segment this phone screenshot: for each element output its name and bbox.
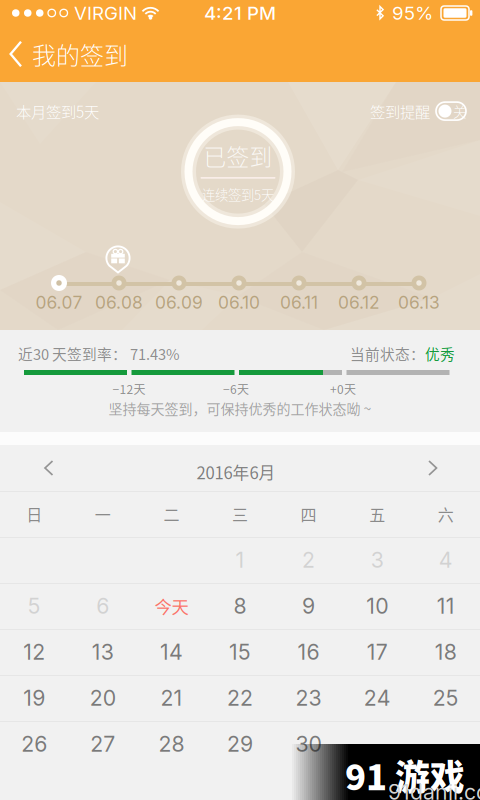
staticText: 3: [371, 547, 384, 573]
staticText: 关: [453, 101, 466, 121]
staticText: 06.12: [338, 292, 380, 313]
button[interactable]: 14: [137, 629, 206, 675]
staticText: 27: [90, 731, 115, 757]
staticText: 19: [23, 685, 45, 711]
button[interactable]: 13: [69, 629, 137, 675]
button[interactable]: 2: [274, 537, 343, 583]
button[interactable]: 8: [206, 583, 274, 629]
staticText: 06.09: [155, 292, 203, 313]
staticText: 2016年6月: [196, 460, 275, 484]
button[interactable]: 16: [274, 629, 343, 675]
staticText: 06.11: [280, 292, 318, 313]
button[interactable]: Previous month: [10, 445, 88, 491]
staticText: 优秀: [425, 343, 455, 364]
button[interactable]: 18: [411, 629, 480, 675]
button[interactable]: [343, 721, 411, 767]
staticText: 06.07: [35, 292, 82, 313]
staticText: 8: [233, 593, 246, 619]
button[interactable]: 22: [206, 675, 274, 721]
button[interactable]: Sign-in reminder, off: [436, 102, 466, 120]
staticText: 10: [366, 593, 388, 619]
button[interactable]: 21: [137, 675, 206, 721]
staticText: 坚持每天签到，可保持优秀的工作状态呦 ~: [108, 398, 371, 418]
staticText: 95%: [392, 2, 433, 24]
staticText: 六: [438, 502, 454, 526]
staticText: 4: [439, 547, 453, 573]
staticText: 11: [437, 593, 455, 619]
staticText: 本月签到5天: [16, 100, 99, 122]
staticText: 5: [28, 593, 41, 619]
staticText: 06.13: [398, 292, 440, 313]
staticText: −12天: [112, 380, 145, 397]
staticText: 20: [90, 685, 116, 711]
staticText: 24: [364, 685, 391, 711]
staticText: 三: [232, 502, 248, 526]
staticText: 15: [229, 639, 251, 665]
button[interactable]: 3: [343, 537, 411, 583]
staticText: 我的签到: [32, 37, 128, 71]
staticText: 14: [160, 639, 183, 665]
staticText: 25: [433, 685, 459, 711]
button[interactable]: 17: [343, 629, 411, 675]
staticText: 2: [302, 547, 315, 573]
staticText: 06.10: [218, 292, 260, 313]
button[interactable]: 30: [274, 721, 343, 767]
staticText: +0天: [330, 380, 356, 397]
button[interactable]: Next month: [394, 445, 472, 491]
staticText: 二: [163, 502, 179, 526]
staticText: 22: [227, 685, 253, 711]
button[interactable]: 我的签到: [0, 26, 142, 82]
button[interactable]: 今天: [137, 583, 206, 629]
staticText: 近30 天签到率： 71.43%: [18, 343, 180, 364]
staticText: 91danji.com: [388, 779, 480, 800]
staticText: 13: [92, 639, 114, 665]
staticText: −6天: [223, 380, 249, 397]
button[interactable]: 29: [206, 721, 274, 767]
staticText: 四: [301, 502, 317, 526]
staticText: 16: [298, 639, 320, 665]
staticText: 30: [296, 731, 322, 757]
button[interactable]: 12: [0, 629, 69, 675]
button[interactable]: 5: [0, 583, 69, 629]
staticText: 28: [158, 731, 184, 757]
staticText: 9: [302, 593, 315, 619]
staticText: 12: [23, 639, 45, 665]
staticText: 当前状态：: [350, 343, 425, 364]
button[interactable]: 27: [69, 721, 137, 767]
staticText: 签到提醒: [370, 100, 430, 122]
staticText: 一: [95, 502, 111, 526]
button[interactable]: 23: [274, 675, 343, 721]
staticText: 日: [26, 502, 42, 526]
button[interactable]: 10: [343, 583, 411, 629]
button[interactable]: 15: [206, 629, 274, 675]
staticText: 今天: [154, 593, 188, 619]
button[interactable]: 26: [0, 721, 69, 767]
button[interactable]: 19: [0, 675, 69, 721]
staticText: 4:21 PM: [204, 2, 276, 24]
button[interactable]: 28: [137, 721, 206, 767]
staticText: 五: [369, 502, 385, 526]
button[interactable]: 1: [206, 537, 274, 583]
button[interactable]: 6: [69, 583, 137, 629]
button[interactable]: 25: [411, 675, 480, 721]
staticText: 26: [21, 731, 47, 757]
staticText: 21: [160, 685, 182, 711]
staticText: VIRGIN: [74, 2, 137, 24]
button[interactable]: 24: [343, 675, 411, 721]
staticText: 1: [235, 547, 244, 573]
staticText: 17: [367, 639, 388, 665]
button[interactable]: [411, 721, 480, 767]
button[interactable]: 4: [411, 537, 480, 583]
staticText: 29: [227, 731, 253, 757]
staticText: 6: [96, 593, 109, 619]
button[interactable]: 11: [411, 583, 480, 629]
staticText: 91 游戏: [345, 750, 465, 800]
staticText: 06.08: [95, 292, 143, 313]
button[interactable]: 20: [69, 675, 137, 721]
staticText: 连续签到5天: [202, 185, 274, 204]
staticText: 23: [296, 685, 322, 711]
button[interactable]: 9: [274, 583, 343, 629]
